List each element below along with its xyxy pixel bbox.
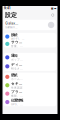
staticText: 接続 bbox=[11, 33, 17, 37]
staticText: セキュリティ bbox=[11, 81, 24, 86]
button[interactable]: プライバシー bbox=[4, 89, 56, 98]
button[interactable]: ディスプレイ bbox=[4, 62, 56, 71]
staticText: Samsung account bbox=[5, 26, 18, 29]
staticText: Wi-Fi、Bluetooth bbox=[11, 37, 24, 41]
staticText: 位置情報 bbox=[11, 98, 23, 102]
staticText: 設定 bbox=[5, 11, 17, 19]
staticText: サウンドとバイブ bbox=[11, 40, 24, 44]
button[interactable]: 通知 bbox=[4, 53, 56, 62]
staticText: 壁紙 bbox=[11, 73, 17, 77]
button[interactable]: セキュリティ bbox=[4, 81, 56, 89]
staticText: ポップアップ、通知 bbox=[11, 58, 24, 61]
staticText: ホーム、ロック画面 bbox=[11, 77, 24, 81]
staticText: ディスプレイ bbox=[11, 62, 24, 67]
button[interactable]: サウンドとバイブ bbox=[4, 40, 56, 47]
staticText: 権限、アクセス bbox=[11, 94, 24, 98]
staticText: GPS、アプリ bbox=[11, 103, 24, 106]
staticText: Galaxy S24 Ultra bbox=[5, 21, 18, 25]
staticText: プライバシー bbox=[11, 90, 24, 94]
button[interactable]: 位置情報 bbox=[4, 98, 56, 106]
staticText: 通知 bbox=[11, 53, 17, 58]
staticText: 音量、着信音 bbox=[11, 44, 24, 48]
staticText: 9:41 bbox=[4, 6, 10, 10]
button[interactable]: 接続 bbox=[4, 33, 56, 40]
staticText: 生体認証 bbox=[11, 86, 23, 89]
staticText: ▮▮ ▬ bbox=[51, 7, 56, 10]
button[interactable]: 壁紙 bbox=[4, 73, 56, 81]
button[interactable]: Search bbox=[51, 13, 55, 17]
staticText: 明るさ、ダーク bbox=[11, 67, 24, 70]
button[interactable]: Galaxy S24 Ultra bbox=[4, 20, 56, 30]
